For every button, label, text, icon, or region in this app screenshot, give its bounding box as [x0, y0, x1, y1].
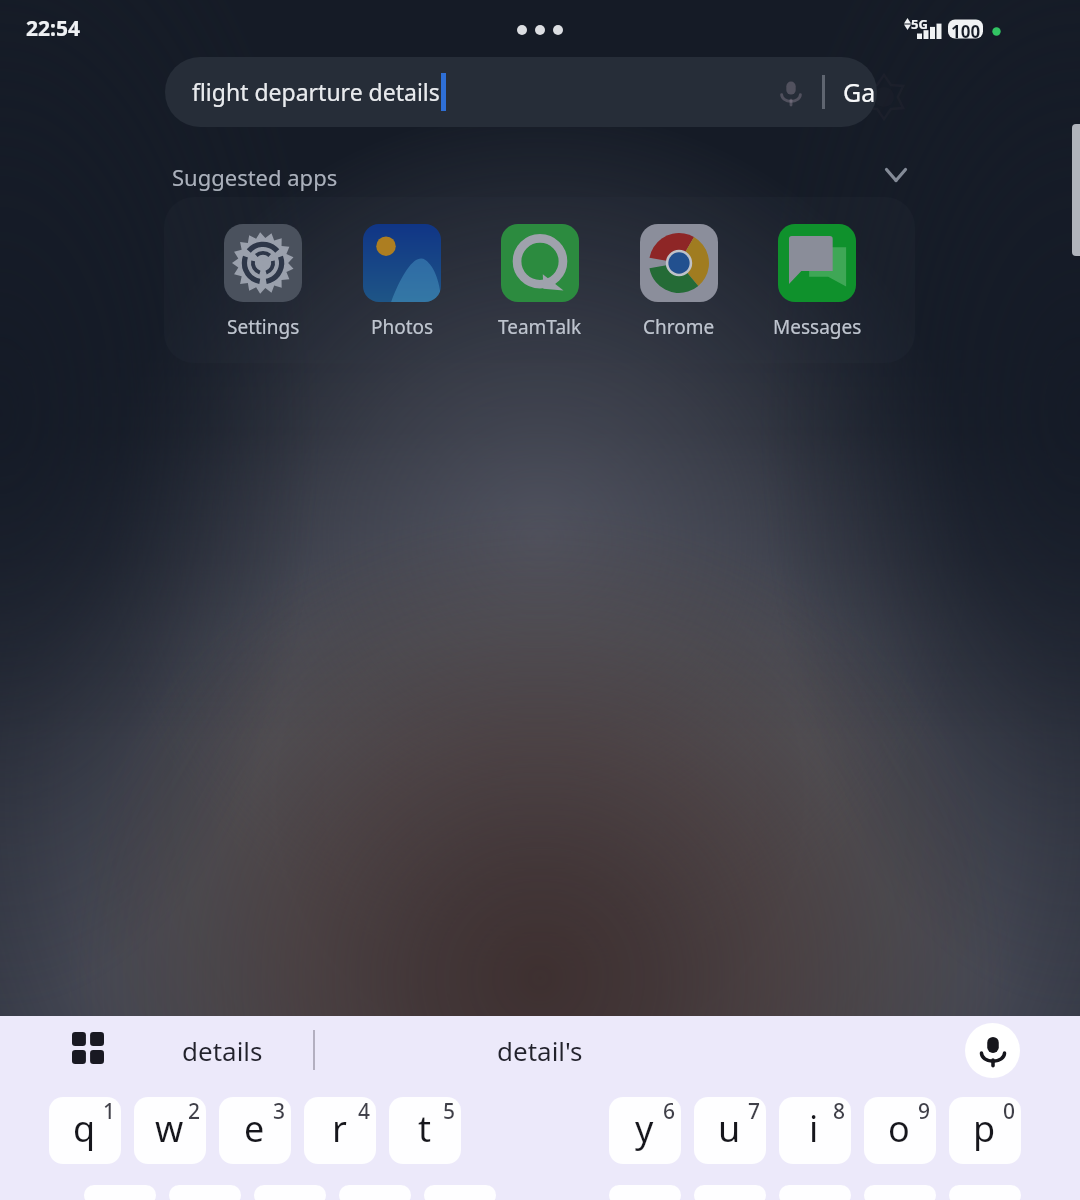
staticText: w: [155, 1104, 184, 1153]
button[interactable]: Settings: [193, 224, 333, 340]
staticText: Ga: [843, 75, 876, 109]
staticText: e: [244, 1104, 265, 1153]
button[interactable]: key: [609, 1185, 681, 1200]
button[interactable]: detail's: [470, 1018, 610, 1082]
button[interactable]: Collapse suggested apps: [875, 156, 917, 194]
staticText: 3: [273, 1097, 286, 1126]
button[interactable]: p: [949, 1097, 1021, 1164]
button[interactable]: Google Lens: [843, 72, 883, 112]
staticText: details: [182, 1033, 263, 1068]
button[interactable]: Voice input: [965, 1023, 1020, 1078]
button[interactable]: r: [304, 1097, 376, 1164]
button[interactable]: w: [134, 1097, 206, 1164]
staticText: 100: [951, 20, 981, 43]
staticText: y: [635, 1104, 654, 1153]
staticText: 7: [748, 1097, 761, 1126]
staticText: i: [809, 1104, 819, 1153]
button[interactable]: e: [219, 1097, 291, 1164]
staticText: 0: [1003, 1097, 1016, 1126]
button[interactable]: Messages: [747, 224, 887, 340]
button[interactable]: key: [779, 1185, 851, 1200]
button[interactable]: TeamTalk: [470, 224, 610, 340]
staticText: t: [418, 1104, 431, 1153]
staticText: Suggested apps: [172, 162, 338, 192]
button[interactable]: q: [49, 1097, 121, 1164]
button[interactable]: t: [389, 1097, 461, 1164]
button[interactable]: o: [864, 1097, 936, 1164]
staticText: r: [332, 1104, 347, 1153]
staticText: Chrome: [643, 314, 715, 340]
staticText: 5: [443, 1097, 456, 1126]
staticText: 22:54: [26, 14, 80, 43]
button[interactable]: Chrome: [609, 224, 749, 340]
button[interactable]: u: [694, 1097, 766, 1164]
staticText: Settings: [227, 314, 300, 340]
staticText: detail's: [497, 1033, 583, 1068]
button[interactable]: y: [609, 1097, 681, 1164]
button[interactable]: key: [864, 1185, 936, 1200]
button[interactable]: details: [160, 1018, 284, 1082]
button[interactable]: key: [254, 1185, 326, 1200]
staticText: 4: [358, 1097, 371, 1126]
staticText: 1: [103, 1097, 116, 1126]
staticText: 6: [663, 1097, 676, 1126]
button[interactable]: key: [694, 1185, 766, 1200]
staticText: flight departure details: [192, 76, 440, 107]
button[interactable]: Voice search: [773, 75, 809, 111]
button[interactable]: i: [779, 1097, 851, 1164]
button[interactable]: key: [339, 1185, 411, 1200]
staticText: Photos: [371, 314, 434, 340]
button[interactable]: key: [84, 1185, 156, 1200]
staticText: o: [888, 1104, 910, 1153]
button[interactable]: Clipboard: [62, 1022, 113, 1073]
button[interactable]: Photos: [332, 224, 472, 340]
staticText: TeamTalk: [498, 314, 582, 340]
staticText: 9: [918, 1097, 931, 1126]
staticText: q: [73, 1104, 96, 1153]
button[interactable]: key: [169, 1185, 241, 1200]
staticText: u: [718, 1104, 741, 1153]
staticText: 2: [188, 1097, 201, 1126]
button[interactable]: [165, 57, 877, 127]
staticText: 5G: [911, 15, 928, 33]
staticText: 8: [833, 1097, 846, 1126]
staticText: Messages: [773, 314, 862, 340]
staticText: p: [973, 1104, 996, 1153]
button[interactable]: key: [949, 1185, 1021, 1200]
button[interactable]: key: [424, 1185, 496, 1200]
